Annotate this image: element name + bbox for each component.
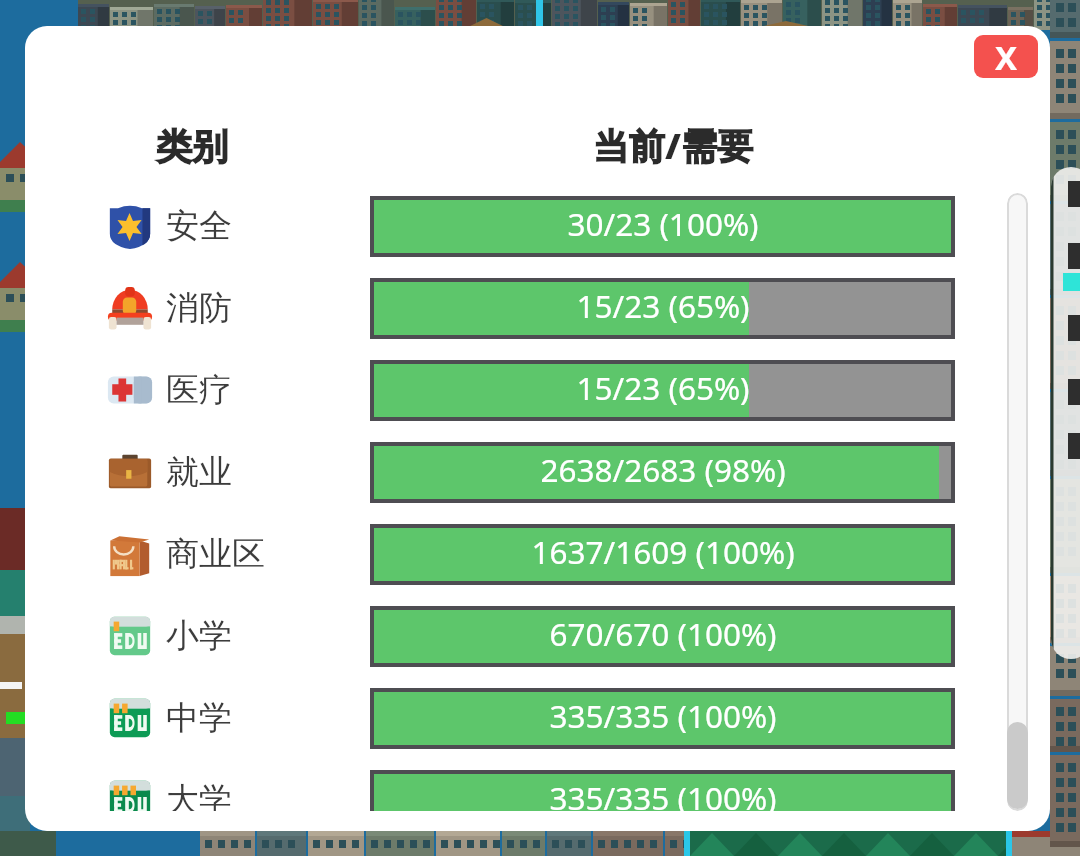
staticText: 商业区 <box>166 533 265 575</box>
button[interactable]: 安全 <box>106 196 376 256</box>
button[interactable]: 30/23 (100%) <box>374 200 951 253</box>
staticText: 安全 <box>166 205 232 247</box>
button[interactable]: 335/335 (100%) <box>374 692 951 745</box>
staticText: 335/335 (100%) <box>549 694 777 737</box>
button[interactable]: 消防 <box>106 278 376 338</box>
staticText: 消防 <box>166 287 232 329</box>
staticText: 小学 <box>166 615 232 657</box>
button[interactable]: 1637/1609 (100%) <box>374 528 951 581</box>
button[interactable]: 2638/2683 (98%) <box>374 446 951 499</box>
staticText: 医疗 <box>166 369 232 411</box>
staticText: 类别 <box>156 124 228 169</box>
button[interactable]: 中学 <box>106 688 376 748</box>
button[interactable]: 就业 <box>106 442 376 502</box>
staticText: 1637/1609 (100%) <box>531 530 795 573</box>
button[interactable]: 335/335 (100%) <box>374 774 951 811</box>
button[interactable]: 大学 <box>106 770 376 811</box>
staticText: 就业 <box>166 451 232 493</box>
button[interactable]: Scroll <box>1007 193 1028 811</box>
button[interactable]: 15/23 (65%) <box>374 364 951 417</box>
staticText: 670/670 (100%) <box>549 612 777 655</box>
staticText: 30/23 (100%) <box>567 202 759 245</box>
staticText: 大学 <box>166 779 232 811</box>
staticText: 15/23 (65%) <box>576 366 750 409</box>
button[interactable]: 15/23 (65%) <box>374 282 951 335</box>
staticText: 335/335 (100%) <box>549 776 777 811</box>
staticText: 中学 <box>166 697 232 739</box>
button[interactable]: 小学 <box>106 606 376 666</box>
staticText: 2638/2683 (98%) <box>540 448 786 491</box>
button[interactable]: 商业区 <box>106 524 376 584</box>
button[interactable]: 670/670 (100%) <box>374 610 951 663</box>
button[interactable]: Close <box>974 35 1038 78</box>
staticText: X <box>995 35 1018 78</box>
staticText: 15/23 (65%) <box>576 284 750 327</box>
staticText: 当前/需要 <box>593 121 753 170</box>
button[interactable]: 医疗 <box>106 360 376 420</box>
